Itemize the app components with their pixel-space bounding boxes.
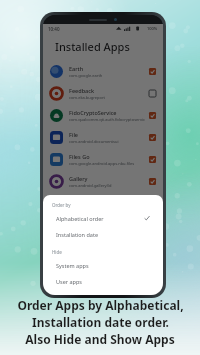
button[interactable]: File	[43, 126, 163, 148]
staticText: 10:40	[48, 26, 60, 32]
staticText: Order Apps by Alphabetical,	[17, 297, 184, 313]
button[interactable]: Shown	[149, 112, 156, 119]
staticText: com.android.documentsui	[69, 139, 119, 144]
button[interactable]: Shown	[149, 178, 156, 185]
button[interactable]: Shown	[149, 134, 156, 141]
button[interactable]: System apps	[43, 257, 163, 273]
staticText: Installation date	[56, 231, 99, 238]
button[interactable]: Earth	[43, 60, 163, 82]
staticText: com.google.earth	[69, 73, 103, 78]
button[interactable]: Hidden	[149, 90, 156, 97]
staticText: 100%	[147, 26, 158, 31]
button[interactable]: Alphabetical order	[43, 210, 163, 226]
staticText: Also Hide and Show Apps	[25, 331, 175, 347]
button[interactable]: Feedback	[43, 82, 163, 104]
button[interactable]: Files Go	[43, 148, 163, 170]
staticText: Alphabetical order	[56, 215, 104, 222]
staticText: FidoCryptoService	[69, 109, 117, 116]
button[interactable]: User apps	[43, 273, 163, 289]
staticText: com.android.gallery3d	[69, 183, 112, 188]
button[interactable]: FidoCryptoService	[43, 104, 163, 126]
staticText: Hide	[52, 249, 62, 255]
staticText: Earth	[69, 65, 84, 72]
staticText: com.eka.bugreport	[69, 95, 106, 100]
button[interactable]: Shown	[149, 68, 156, 75]
staticText: Installed Apps	[55, 39, 130, 54]
staticText: Files Go	[69, 153, 90, 160]
staticText: com.google.android.apps.nbu.files	[69, 161, 135, 166]
button[interactable]: Gallery	[43, 170, 163, 192]
staticText: Gallery	[69, 175, 88, 182]
staticText: Installation date order.	[32, 314, 169, 330]
staticText: Order by	[52, 202, 71, 208]
button[interactable]: Shown	[149, 156, 156, 163]
staticText: File	[69, 131, 79, 138]
staticText: com.qualcomm.qti.auth.fidocryptoservice	[69, 117, 145, 122]
staticText: Feedback	[69, 87, 94, 94]
staticText: System apps	[56, 262, 89, 269]
staticText: User apps	[56, 278, 82, 285]
button[interactable]: Installation date	[43, 226, 163, 242]
